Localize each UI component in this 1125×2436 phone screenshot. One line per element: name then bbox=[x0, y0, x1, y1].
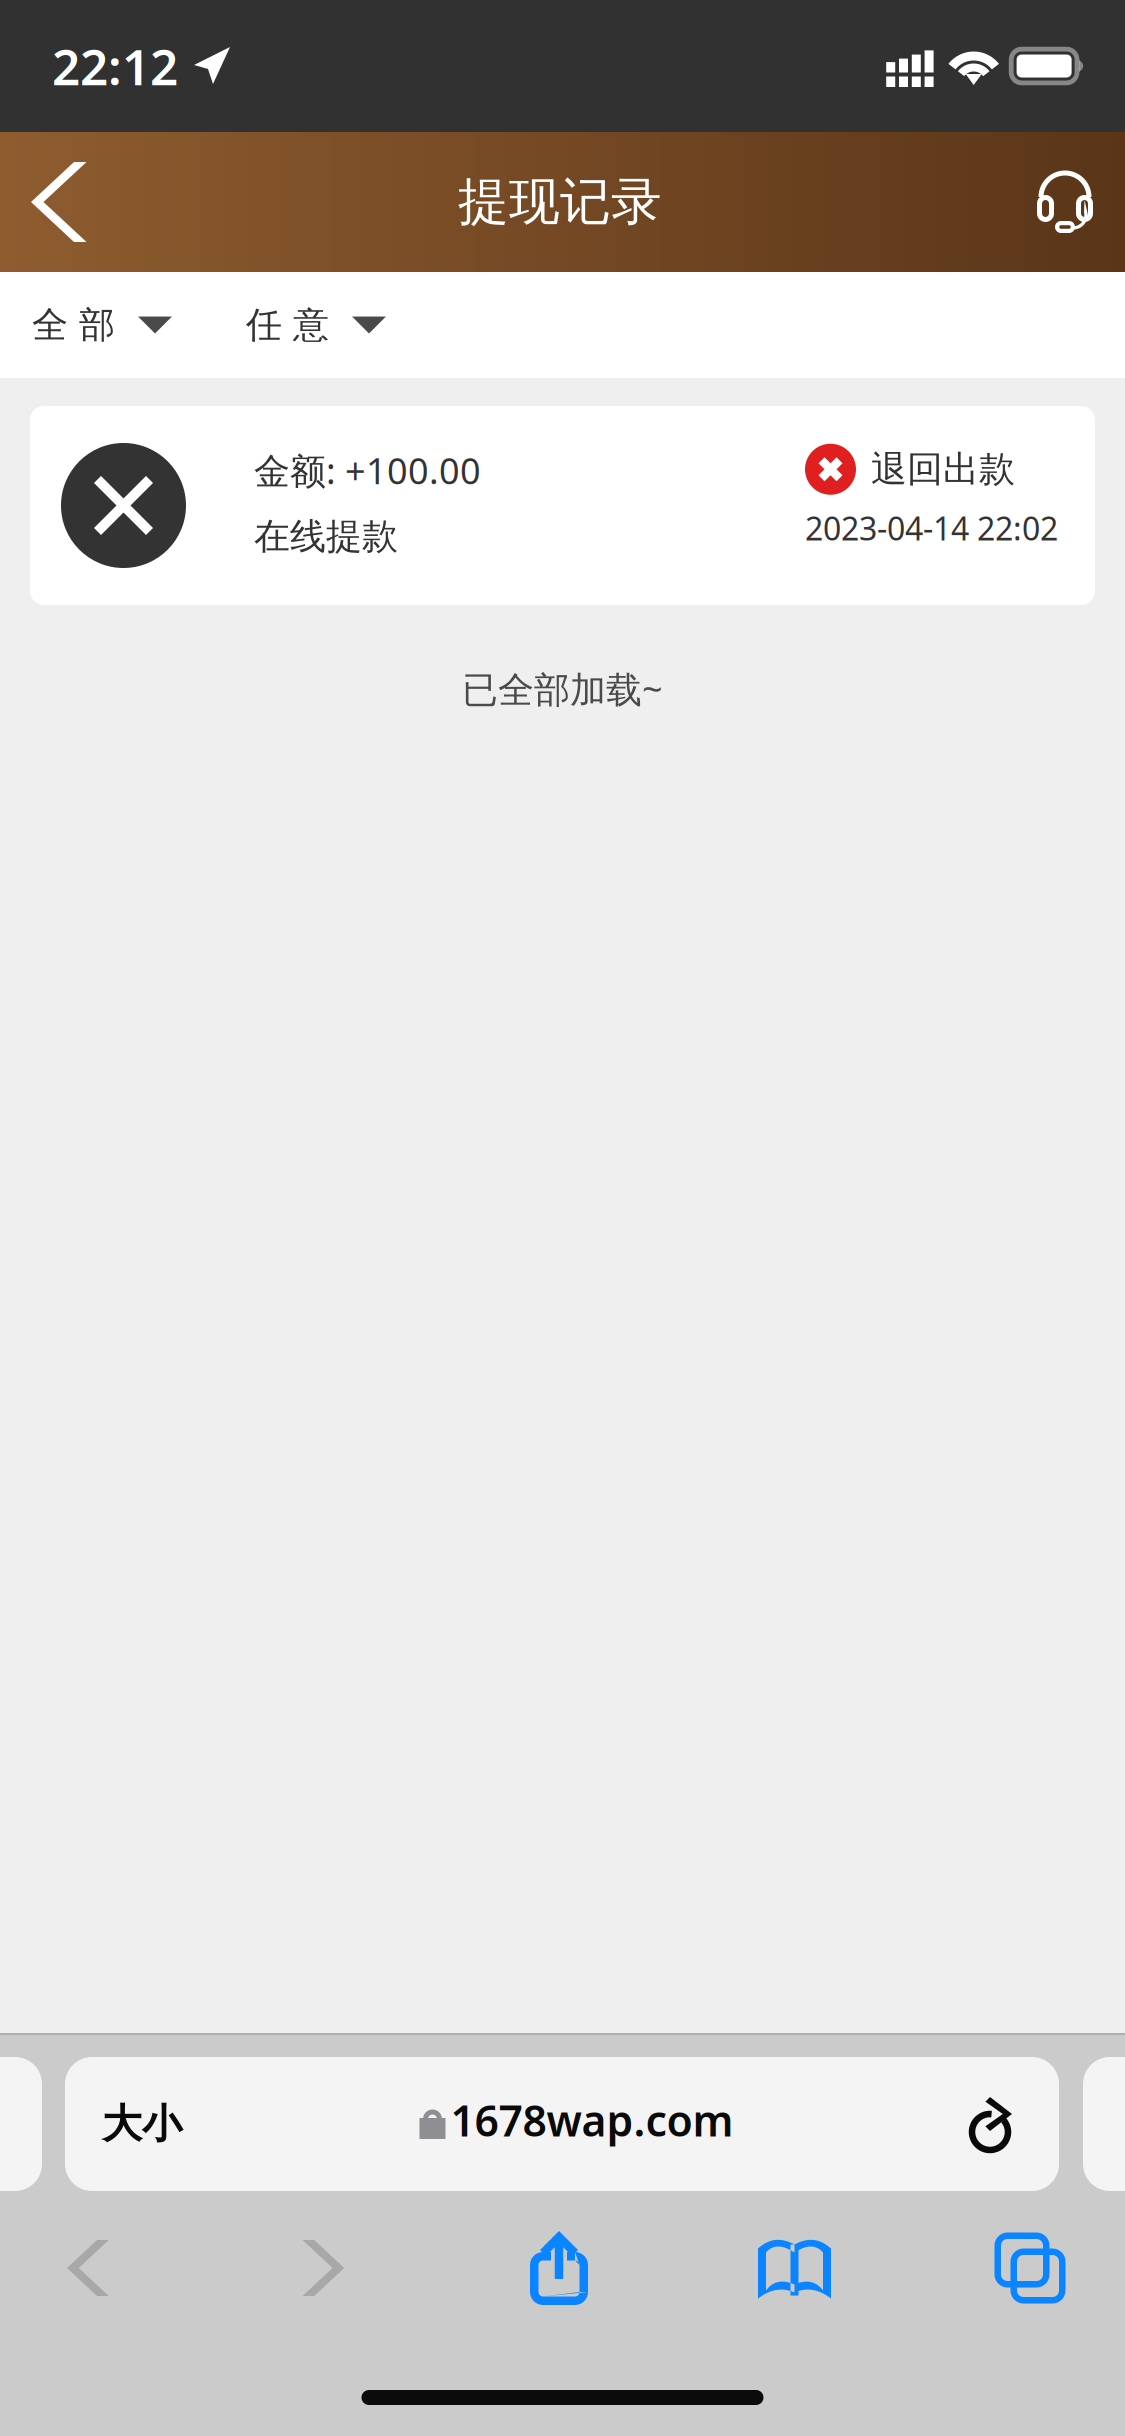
button[interactable]: 全 部 bbox=[12, 272, 192, 378]
staticText: 22:12 bbox=[52, 33, 178, 99]
button[interactable]: 书签 bbox=[739, 2218, 849, 2318]
button[interactable]: 标签页 bbox=[975, 2218, 1085, 2318]
staticText: 任 意 bbox=[246, 303, 329, 347]
staticText: 提现记录 bbox=[458, 171, 662, 233]
staticText: 金额: +100.00 bbox=[254, 446, 481, 494]
staticText: 1678wap.com bbox=[450, 2092, 733, 2148]
button[interactable]: 前进 bbox=[268, 2218, 378, 2318]
staticText: 退回出款 bbox=[871, 447, 1015, 491]
staticText: 大小 bbox=[102, 2099, 182, 2148]
button[interactable]: 任 意 bbox=[226, 272, 406, 378]
staticText: 全 部 bbox=[32, 303, 115, 347]
button[interactable]: 后退 bbox=[33, 2218, 143, 2318]
button[interactable]: 金额: +100.00 bbox=[30, 406, 1095, 605]
staticText: 在线提款 bbox=[254, 514, 398, 558]
button[interactable]: 返回 bbox=[0, 132, 113, 272]
staticText: 2023-04-14 22:02 bbox=[805, 507, 1058, 549]
button[interactable]: 大小 bbox=[65, 2057, 1059, 2191]
staticText: 已全部加载~ bbox=[462, 665, 663, 713]
button[interactable]: 客服 bbox=[1007, 143, 1125, 261]
button[interactable]: 分享 bbox=[504, 2218, 614, 2318]
